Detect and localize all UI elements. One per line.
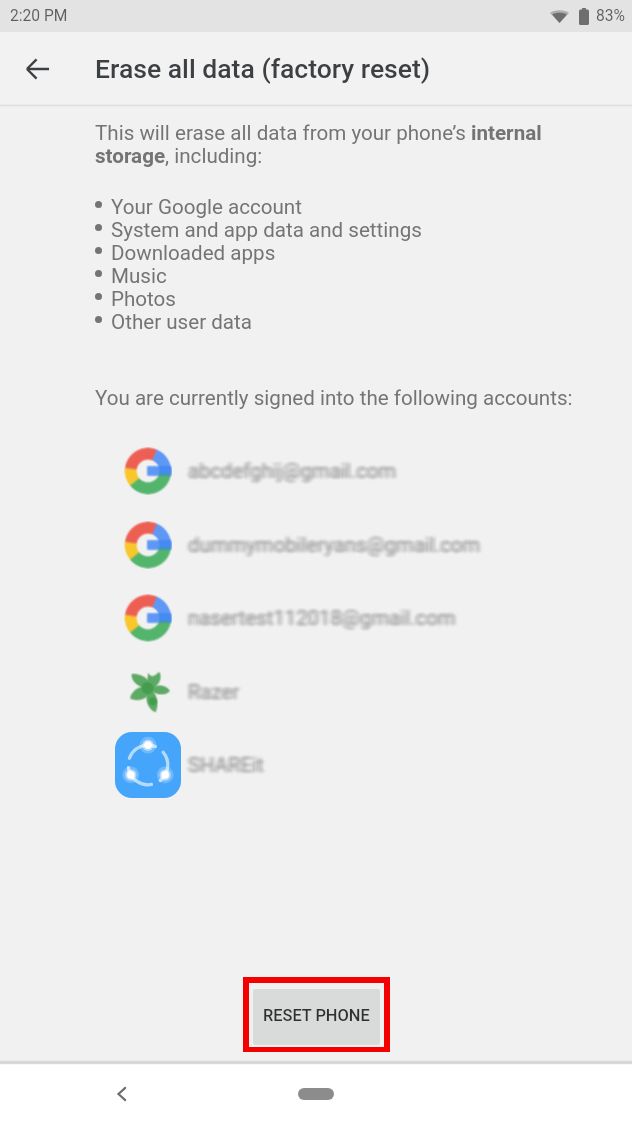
staticText: nasertest112018@gmail.com xyxy=(187,603,455,627)
staticText: nasertest112018@gmail.com xyxy=(191,605,459,629)
staticText: abcdefghij@gmail.com xyxy=(191,461,400,485)
staticText: Razer xyxy=(192,683,244,707)
staticText: nasertest112018@gmail.com xyxy=(185,604,453,628)
staticText: Razer xyxy=(190,681,242,705)
button[interactable]: Home xyxy=(286,1070,346,1118)
staticText: Razer xyxy=(192,678,244,702)
staticText: SHAREit xyxy=(184,753,260,777)
staticText: dummymobileryans@gmail.com xyxy=(185,532,478,556)
staticText: nasertest112018@gmail.com xyxy=(192,609,460,633)
staticText: SHAREit xyxy=(191,751,267,775)
staticText: dummymobileryans@gmail.com xyxy=(185,535,478,559)
staticText: nasertest112018@gmail.com xyxy=(184,604,452,628)
staticText: dummymobileryans@gmail.com xyxy=(188,535,481,559)
button[interactable]: Navigate up xyxy=(13,44,62,93)
staticText: dummymobileryans@gmail.com xyxy=(190,530,483,554)
staticText: abcdefghij@gmail.com xyxy=(190,460,399,484)
staticText: dummymobileryans@gmail.com xyxy=(185,536,478,560)
staticText: dummymobileryans@gmail.com xyxy=(191,530,484,554)
staticText: dummymobileryans@gmail.com xyxy=(191,536,484,560)
staticText: abcdefghij@gmail.com xyxy=(192,462,401,486)
staticText: nasertest112018@gmail.com xyxy=(184,608,452,632)
staticText: abcdefghij@gmail.com xyxy=(185,457,394,481)
staticText: dummymobileryans@gmail.com xyxy=(188,534,481,558)
staticText: 83% xyxy=(596,7,625,25)
button[interactable]: Razer xyxy=(0,655,632,729)
staticText: SHAREit xyxy=(192,754,268,778)
staticText: abcdefghij@gmail.com xyxy=(191,456,400,480)
staticText: SHAREit xyxy=(186,755,262,779)
staticText: SHAREit xyxy=(185,754,261,778)
staticText: Razer xyxy=(192,681,244,705)
staticText: dummymobileryans@gmail.com xyxy=(191,532,484,556)
staticText: SHAREit xyxy=(186,752,262,776)
button[interactable]: abcdefghij@gmail.com xyxy=(0,434,632,508)
staticText: Razer xyxy=(184,680,236,704)
staticText: Erase all data (factory reset) xyxy=(95,53,431,84)
staticText: Razer xyxy=(188,677,240,701)
staticText: Razer xyxy=(185,681,237,705)
staticText: abcdefghij@gmail.com xyxy=(187,456,396,480)
staticText: nasertest112018@gmail.com xyxy=(191,603,459,627)
staticText: nasertest112018@gmail.com xyxy=(190,607,458,631)
staticText: abcdefghij@gmail.com xyxy=(189,457,398,481)
staticText: nasertest112018@gmail.com xyxy=(190,605,458,629)
staticText: dummymobileryans@gmail.com xyxy=(191,535,484,559)
button[interactable]: Back xyxy=(98,1070,146,1118)
staticText: SHAREit xyxy=(184,754,260,778)
staticText: SHAREit xyxy=(189,755,265,779)
staticText: Razer xyxy=(189,680,241,704)
button[interactable]: RESET PHONE xyxy=(253,989,380,1045)
staticText: Razer xyxy=(191,681,243,705)
staticText: nasertest112018@gmail.com xyxy=(185,608,453,632)
staticText: nasertest112018@gmail.com xyxy=(187,607,455,631)
staticText: dummymobileryans@gmail.com xyxy=(184,533,477,557)
staticText: dummymobileryans@gmail.com xyxy=(185,530,478,554)
staticText: abcdefghij@gmail.com xyxy=(185,460,394,484)
staticText: dummymobileryans@gmail.com xyxy=(186,532,479,556)
staticText: abcdefghij@gmail.com xyxy=(192,460,401,484)
staticText: Razer xyxy=(189,678,241,702)
staticText: nasertest112018@gmail.com xyxy=(191,608,459,632)
staticText: abcdefghij@gmail.com xyxy=(184,462,393,486)
staticText: SHAREit xyxy=(184,750,260,774)
staticText: dummymobileryans@gmail.com xyxy=(188,531,481,555)
staticText: Razer xyxy=(184,679,236,703)
staticText: Razer xyxy=(192,680,244,704)
staticText: nasertest112018@gmail.com xyxy=(188,606,456,630)
staticText: nasertest112018@gmail.com xyxy=(188,604,456,628)
staticText: dummymobileryans@gmail.com xyxy=(187,536,480,560)
staticText: nasertest112018@gmail.com xyxy=(187,605,455,629)
staticText: nasertest112018@gmail.com xyxy=(186,605,454,629)
staticText: SHAREit xyxy=(186,751,262,775)
staticText: dummymobileryans@gmail.com xyxy=(190,535,483,559)
button[interactable]: nasertest112018@gmail.com xyxy=(0,581,632,655)
staticText: dummymobileryans@gmail.com xyxy=(189,530,482,554)
staticText: abcdefghij@gmail.com xyxy=(190,457,399,481)
staticText: dummymobileryans@gmail.com xyxy=(184,536,477,560)
button[interactable]: SHAREit xyxy=(0,728,632,802)
staticText: abcdefghij@gmail.com xyxy=(184,456,393,480)
button[interactable]: dummymobileryans@gmail.com xyxy=(0,508,632,582)
staticText: abcdefghij@gmail.com xyxy=(190,462,399,486)
staticText: nasertest112018@gmail.com xyxy=(188,607,456,631)
staticText: Razer xyxy=(186,678,238,702)
staticText: dummymobileryans@gmail.com xyxy=(192,531,485,555)
staticText: Razer xyxy=(189,677,241,701)
staticText: nasertest112018@gmail.com xyxy=(188,608,456,632)
staticText: nasertest112018@gmail.com xyxy=(189,608,457,632)
staticText: abcdefghij@gmail.com xyxy=(188,456,397,480)
staticText: SHAREit xyxy=(185,753,261,777)
staticText: Razer xyxy=(190,679,242,703)
staticText: dummymobileryans@gmail.com xyxy=(192,536,485,560)
staticText: SHAREit xyxy=(190,756,266,780)
staticText: dummymobileryans@gmail.com xyxy=(185,533,478,557)
staticText: nasertest112018@gmail.com xyxy=(189,607,457,631)
staticText: Razer xyxy=(184,683,236,707)
staticText: SHAREit xyxy=(189,751,265,775)
staticText: Razer xyxy=(191,677,243,701)
staticText: dummymobileryans@gmail.com xyxy=(192,532,485,556)
staticText: Razer xyxy=(187,677,239,701)
staticText: abcdefghij@gmail.com xyxy=(184,459,393,483)
staticText: dummymobileryans@gmail.com xyxy=(186,536,479,560)
